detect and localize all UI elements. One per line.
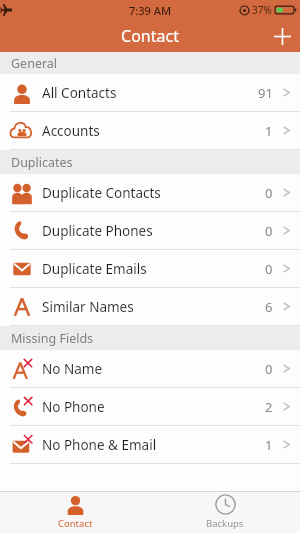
staticText: Contact: [121, 25, 179, 47]
staticText: 1: [265, 436, 273, 454]
button[interactable]: Duplicate Emails: [0, 250, 300, 287]
staticText: No Name: [42, 360, 265, 378]
staticText: Duplicates: [11, 154, 73, 171]
button[interactable]: All Contacts: [0, 74, 300, 111]
button[interactable]: Accounts: [0, 112, 300, 149]
button[interactable]: Duplicate Contacts: [0, 174, 300, 211]
button[interactable]: No Name: [0, 350, 300, 387]
staticText: 1: [265, 122, 273, 140]
staticText: 0: [265, 184, 273, 202]
button[interactable]: Similar Names: [0, 288, 300, 325]
staticText: 0: [265, 222, 273, 240]
staticText: Accounts: [42, 122, 265, 140]
button[interactable]: Duplicate Phones: [0, 212, 300, 249]
staticText: Contact: [58, 517, 93, 530]
button[interactable]: Add contact: [264, 20, 300, 52]
staticText: No Phone & Email: [42, 436, 265, 454]
button[interactable]: Backups: [150, 491, 300, 533]
staticText: 0: [265, 260, 273, 278]
staticText: Duplicate Contacts: [42, 184, 265, 202]
staticText: 0: [265, 360, 273, 378]
staticText: 91: [258, 84, 273, 102]
button[interactable]: No Phone & Email: [0, 426, 300, 463]
staticText: Similar Names: [42, 298, 265, 316]
staticText: Backups: [206, 517, 244, 530]
staticText: 37%: [252, 3, 272, 17]
button[interactable]: No Phone: [0, 388, 300, 425]
button[interactable]: Contact: [0, 491, 150, 533]
staticText: No Phone: [42, 398, 265, 416]
staticText: 7:39 AM: [129, 3, 172, 18]
staticText: Duplicate Emails: [42, 260, 265, 278]
staticText: Missing Fields: [11, 330, 94, 347]
staticText: 6: [265, 298, 273, 316]
staticText: Duplicate Phones: [42, 222, 265, 240]
staticText: All Contacts: [42, 84, 258, 102]
staticText: 2: [265, 398, 273, 416]
staticText: General: [11, 55, 58, 72]
